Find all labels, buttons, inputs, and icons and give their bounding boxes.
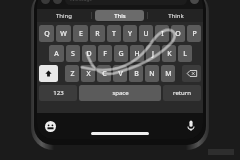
staticText: 123: [53, 89, 64, 97]
button[interactable]: D: [82, 45, 96, 62]
staticText: iMessage: [70, 0, 93, 3]
staticText: Think: [168, 12, 184, 20]
staticText: F: [103, 49, 107, 59]
staticText: N: [149, 69, 155, 79]
button[interactable]: E: [73, 25, 88, 42]
staticText: G: [118, 49, 124, 59]
button[interactable]: F: [98, 45, 112, 62]
staticText: Z: [70, 69, 75, 79]
button[interactable]: H: [130, 45, 144, 62]
staticText: D: [86, 49, 92, 59]
staticText: W: [60, 29, 67, 39]
button[interactable]: P: [187, 25, 201, 42]
button[interactable]: iMessage: [65, 0, 187, 5]
button[interactable]: Backspace: [182, 65, 201, 82]
staticText: return: [173, 89, 191, 97]
button[interactable]: Thing: [40, 10, 88, 21]
staticText: V: [118, 69, 123, 79]
button[interactable]: Apps: [53, 0, 62, 4]
button[interactable]: O: [171, 25, 185, 42]
button[interactable]: J: [146, 45, 160, 62]
button[interactable]: V: [113, 65, 127, 82]
staticText: B: [134, 69, 139, 79]
button[interactable]: 123: [39, 85, 77, 101]
button[interactable]: R: [90, 25, 105, 42]
staticText: T: [112, 29, 116, 39]
staticText: J: [152, 49, 154, 59]
staticText: A: [54, 49, 59, 59]
button[interactable]: Z: [65, 65, 79, 82]
button[interactable]: B: [129, 65, 143, 82]
button[interactable]: Y: [123, 25, 137, 42]
staticText: U: [143, 29, 149, 39]
staticText: L: [183, 49, 187, 59]
staticText: P: [192, 29, 197, 39]
button[interactable]: L: [178, 45, 192, 62]
button[interactable]: Think: [151, 10, 200, 21]
staticText: X: [86, 69, 91, 79]
button[interactable]: W: [56, 25, 71, 42]
button[interactable]: I: [155, 25, 169, 42]
staticText: M: [165, 69, 172, 79]
staticText: C: [102, 69, 107, 79]
staticText: K: [167, 49, 172, 59]
staticText: R: [95, 29, 100, 39]
button[interactable]: Emoji: [45, 121, 56, 132]
button[interactable]: M: [161, 65, 175, 82]
button[interactable]: U: [139, 25, 153, 42]
button[interactable]: return: [163, 85, 201, 101]
button[interactable]: This: [95, 10, 144, 21]
staticText: S: [71, 49, 75, 59]
button[interactable]: G: [114, 45, 128, 62]
button[interactable]: K: [162, 45, 176, 62]
button[interactable]: Dictation: [187, 120, 195, 132]
button[interactable]: S: [66, 45, 80, 62]
staticText: E: [79, 29, 83, 39]
staticText: This: [114, 12, 126, 20]
button[interactable]: Camera: [41, 0, 50, 4]
staticText: Y: [128, 29, 132, 39]
button[interactable]: N: [145, 65, 159, 82]
staticText: space: [112, 89, 129, 97]
staticText: O: [175, 29, 181, 39]
staticText: I: [161, 29, 164, 39]
staticText: H: [134, 49, 140, 59]
button[interactable]: Send: [190, 0, 199, 4]
staticText: Thing: [56, 12, 72, 20]
button[interactable]: Q: [39, 25, 54, 42]
button[interactable]: Shift: [39, 65, 58, 82]
button[interactable]: A: [49, 45, 64, 62]
button[interactable]: space: [79, 85, 161, 101]
button[interactable]: C: [97, 65, 111, 82]
button[interactable]: X: [81, 65, 95, 82]
button[interactable]: T: [107, 25, 121, 42]
staticText: Q: [44, 29, 50, 39]
